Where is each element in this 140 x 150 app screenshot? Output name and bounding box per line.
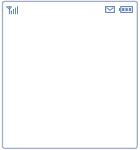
button[interactable]: Messages: [105, 6, 115, 13]
button[interactable]: Battery: [119, 6, 133, 13]
button[interactable]: Signal strength: [6, 5, 20, 15]
